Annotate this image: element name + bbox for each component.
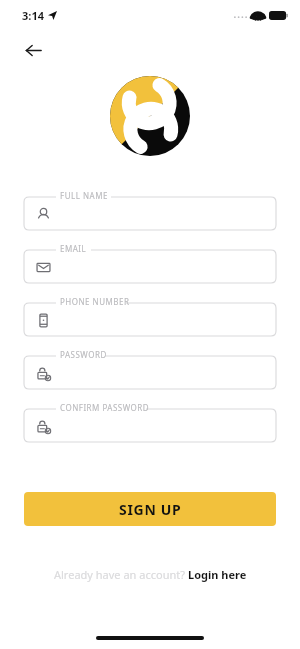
- button[interactable]: FULL NAME: [24, 190, 276, 230]
- button[interactable]: Back: [16, 33, 50, 67]
- staticText: PHONE NUMBER: [60, 296, 130, 307]
- staticText: PASSWORD: [60, 349, 107, 360]
- button[interactable]: PHONE NUMBER: [24, 296, 276, 336]
- staticText: SIGN UP: [119, 500, 182, 519]
- staticText: 3:14: [22, 8, 44, 23]
- staticText: EMAIL: [60, 243, 87, 254]
- button[interactable]: Already have an account?: [0, 567, 300, 582]
- button[interactable]: SIGN UP: [24, 492, 276, 526]
- staticText: CONFIRM PASSWORD: [60, 402, 150, 413]
- button[interactable]: EMAIL: [24, 243, 276, 283]
- staticText: Login here: [188, 567, 247, 582]
- staticText: FULL NAME: [60, 190, 108, 201]
- staticText: Already have an account?: [54, 567, 188, 582]
- button[interactable]: PASSWORD: [24, 349, 276, 389]
- button[interactable]: CONFIRM PASSWORD: [24, 402, 276, 442]
